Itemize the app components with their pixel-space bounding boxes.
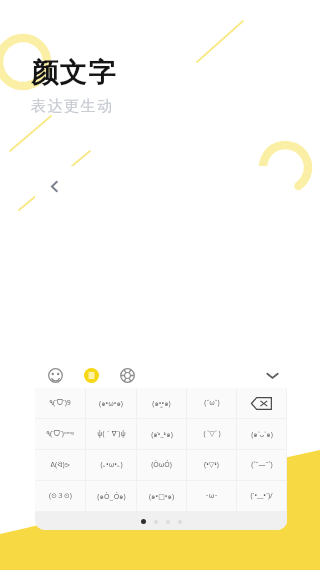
staticText: ٩(ˊᗜˋ)9 — [49, 398, 71, 408]
button[interactable]: Settings — [114, 362, 140, 388]
staticText: ᕕ(ᐛ)ᕗ — [50, 460, 70, 470]
staticText: (๑•□•๑) — [149, 491, 174, 502]
button[interactable]: (๑Ò‿Ó๑) — [86, 481, 136, 511]
button[interactable]: ٩(ˊᗜˋ)ᵒᵐᵍ — [35, 419, 85, 449]
staticText: (⊙３⊙) — [49, 491, 72, 501]
staticText: (๑•ω•๑) — [99, 398, 123, 409]
staticText: (˘ω˘) — [204, 398, 220, 408]
button[interactable]: ･ω･ — [187, 481, 236, 511]
button[interactable]: Delete — [237, 388, 286, 418]
button[interactable]: (๑˃ᴗ˂๑) — [237, 419, 286, 449]
staticText: (•̀▽•́) — [204, 460, 219, 470]
button[interactable]: (•̀▽•́) — [187, 450, 236, 480]
staticText: ψ(｀∇´)ψ — [97, 429, 126, 439]
staticText: 颜文字 — [31, 56, 117, 90]
button[interactable]: Emoji — [42, 362, 68, 388]
button[interactable]: (๑•ω•๑) — [86, 388, 136, 418]
button[interactable]: (ÒωÓ) — [137, 450, 186, 480]
staticText: (ˊ•__•ˋ)/ — [250, 491, 273, 501]
button[interactable]: ᕕ(ᐛ)ᕗ — [35, 450, 85, 480]
staticText: (๑˃ᴗ˂๑) — [251, 429, 273, 440]
staticText: ･ω･ — [205, 491, 218, 501]
staticText: (ÒωÓ) — [151, 460, 172, 470]
button[interactable]: (˘ω˘) — [187, 388, 236, 418]
staticText: (˚ˆ—ˆ˚) — [251, 460, 273, 470]
button[interactable]: ψ(｀∇´)ψ — [86, 419, 136, 449]
button[interactable]: (ˊ•__•ˋ)/ — [237, 481, 286, 511]
button[interactable]: (๑•□•๑) — [137, 481, 186, 511]
button[interactable]: Back — [39, 171, 69, 201]
staticText: 表达更生动 — [31, 97, 114, 116]
button[interactable]: (⊙３⊙) — [35, 481, 85, 511]
button[interactable]: ٩(ˊᗜˋ)9 — [35, 388, 85, 418]
button[interactable]: ( ˃▽˂ ) — [187, 419, 236, 449]
button[interactable]: Collapse keyboard — [257, 362, 287, 388]
staticText: (๑Ò‿Ó๑) — [97, 491, 126, 502]
staticText: ٩(ˊᗜˋ)ᵒᵐᵍ — [46, 429, 74, 439]
button[interactable]: (˚ˆ—ˆ˚) — [237, 450, 286, 480]
staticText: (｡•ω•｡) — [100, 460, 123, 470]
staticText: (๑•̀_•́๑) — [151, 429, 173, 440]
staticText: (๑•̫•๑) — [152, 398, 171, 409]
button[interactable]: Kaomoji — [78, 362, 104, 388]
button[interactable]: (๑•̫•๑) — [137, 388, 186, 418]
button[interactable]: (｡•ω•｡) — [86, 450, 136, 480]
staticText: ( ˃▽˂ ) — [203, 429, 221, 439]
button[interactable]: (๑•̀_•́๑) — [137, 419, 186, 449]
